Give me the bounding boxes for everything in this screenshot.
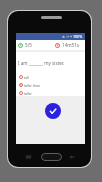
staticText: tall: [24, 75, 29, 79]
button[interactable]: tall: [16, 73, 85, 81]
button[interactable]: taller than: [16, 81, 85, 89]
staticText: 14m51s: [62, 42, 80, 48]
button[interactable]: Home: [41, 153, 62, 161]
staticText: taller than: [24, 83, 40, 87]
staticText: I am _______ my sister.: [18, 60, 65, 66]
button[interactable]: Back: [68, 154, 76, 159]
button[interactable]: Submit answer: [45, 103, 61, 119]
staticText: 100%: [73, 34, 83, 39]
button[interactable]: Menu: [24, 154, 32, 159]
staticText: 5/5: [25, 42, 32, 48]
staticText: taller: [24, 91, 32, 95]
button[interactable]: taller: [16, 89, 85, 96]
